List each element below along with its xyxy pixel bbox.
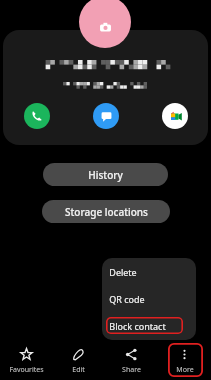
button[interactable]: Call [24,103,50,129]
button[interactable]: Share [105,348,158,375]
button[interactable]: QR code [102,285,196,312]
button[interactable]: Delete [102,258,196,285]
staticText: Storage locations [65,205,148,219]
button[interactable]: Storage locations [42,200,170,223]
staticText: Delete [109,266,137,278]
staticText: Share [122,365,141,375]
staticText: More [176,365,194,375]
staticText: Block contact [109,320,166,332]
staticText: QR code [109,293,145,305]
staticText: History [88,168,123,182]
staticText: Favourites [9,365,44,375]
button[interactable]: Message [93,103,119,129]
button[interactable]: More [158,348,211,375]
button[interactable]: Edit [52,348,105,375]
button[interactable]: Video call [162,103,188,129]
button[interactable]: History [43,163,168,186]
button[interactable]: Block contact [102,312,196,339]
button[interactable]: Favourites [0,348,52,375]
button[interactable]: Change photo [79,0,131,48]
staticText: Edit [72,365,85,375]
